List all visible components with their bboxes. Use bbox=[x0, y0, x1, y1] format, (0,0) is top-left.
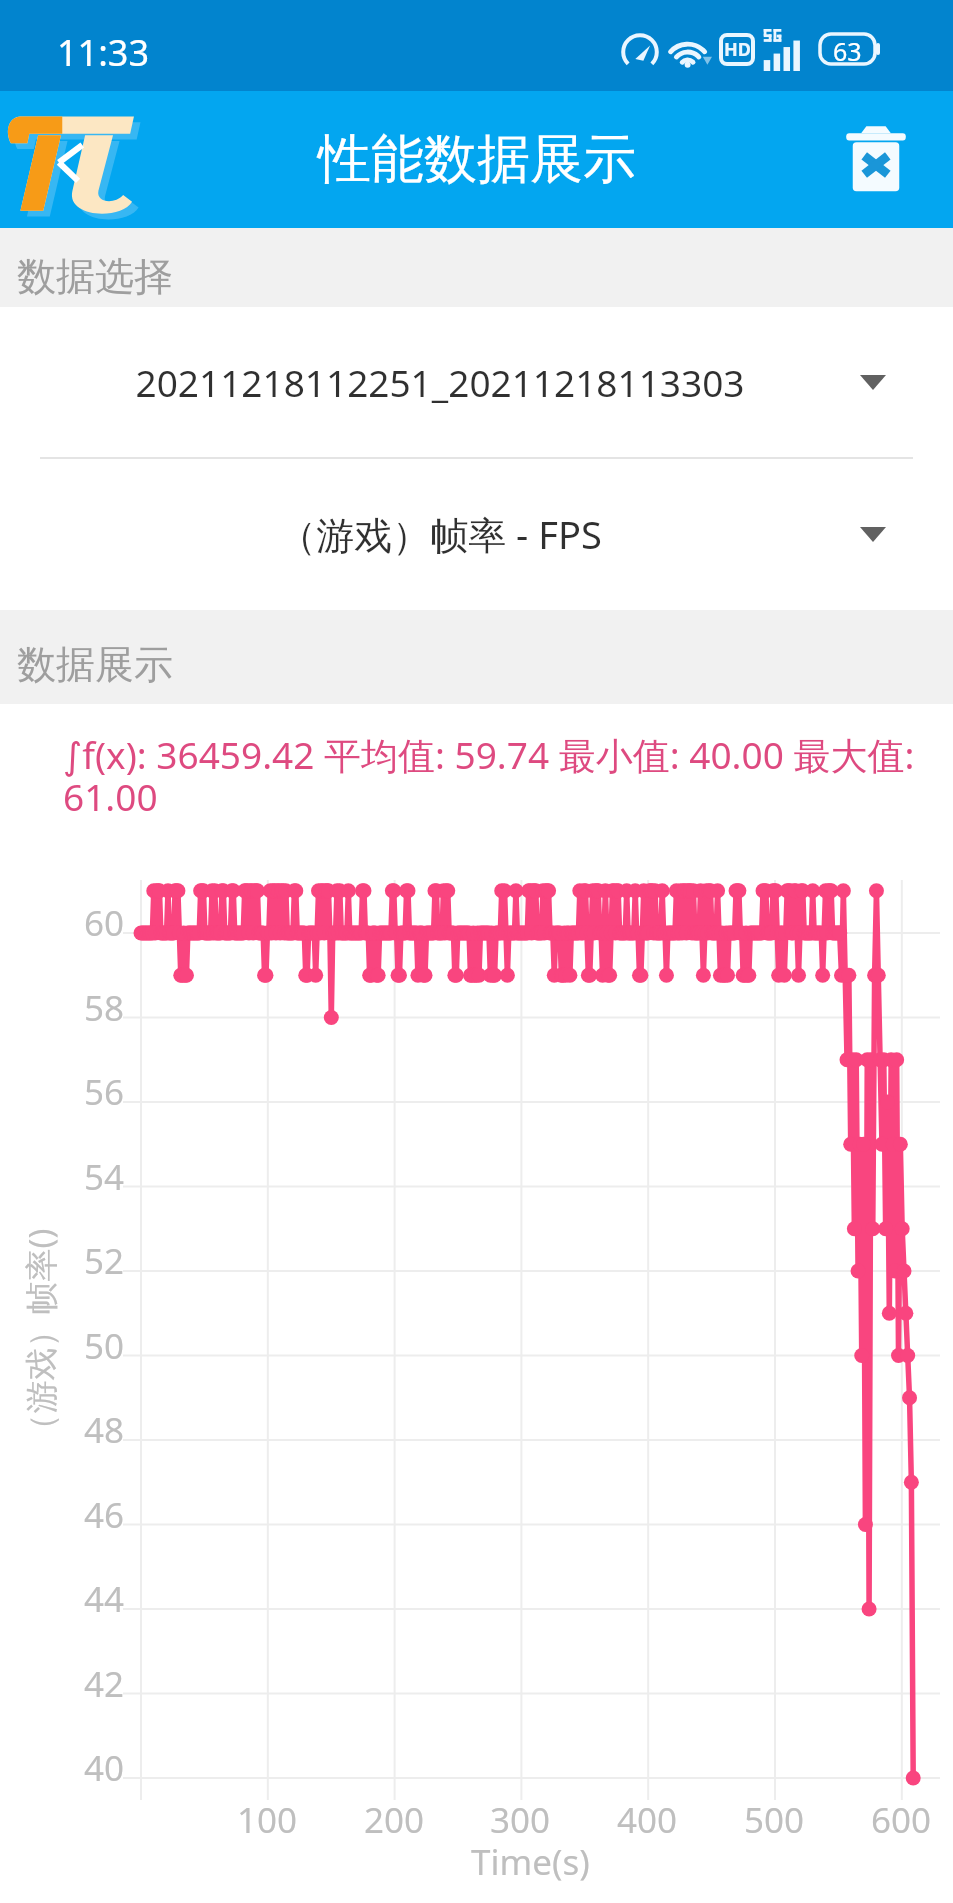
staticText: 60 bbox=[84, 899, 125, 947]
staticText: 11:33 bbox=[57, 28, 150, 77]
staticText: 48 bbox=[84, 1406, 125, 1454]
staticText: 54 bbox=[84, 1153, 125, 1201]
staticText: 600 bbox=[871, 1796, 932, 1844]
staticText: 400 bbox=[617, 1796, 678, 1844]
staticText: 500 bbox=[744, 1796, 805, 1844]
staticText: 性能数据展示 bbox=[318, 126, 636, 193]
button[interactable]: （游戏）帧率 - FPS bbox=[0, 459, 953, 609]
staticText: 56 bbox=[84, 1068, 125, 1116]
other: App logo bbox=[2, 102, 147, 217]
staticText: 44 bbox=[84, 1575, 125, 1623]
staticText: 数据选择 bbox=[17, 252, 173, 301]
staticText: HD bbox=[724, 37, 751, 62]
staticText: 42 bbox=[84, 1660, 125, 1708]
staticText: 200 bbox=[364, 1796, 425, 1844]
staticText: （游戏）帧率() bbox=[17, 1228, 62, 1446]
staticText: 46 bbox=[84, 1491, 125, 1539]
staticText: 100 bbox=[237, 1796, 298, 1844]
staticText: ∫f(x): 36459.42 平均值: 59.74 最小值: 40.00 最大… bbox=[63, 729, 943, 822]
staticText: 数据展示 bbox=[17, 640, 173, 689]
staticText: 52 bbox=[84, 1237, 125, 1285]
button[interactable]: 20211218112251_20211218113303 bbox=[0, 307, 953, 457]
staticText: 20211218112251_20211218113303 bbox=[135, 357, 745, 407]
staticText: 58 bbox=[84, 984, 125, 1032]
staticText: 50 bbox=[84, 1322, 125, 1370]
button[interactable]: Delete bbox=[833, 117, 919, 203]
staticText: 40 bbox=[84, 1744, 125, 1792]
staticText: 300 bbox=[490, 1796, 551, 1844]
staticText: Time(s) bbox=[471, 1838, 590, 1886]
staticText: 63 bbox=[833, 34, 862, 64]
staticText: （游戏）帧率 - FPS bbox=[278, 508, 602, 560]
